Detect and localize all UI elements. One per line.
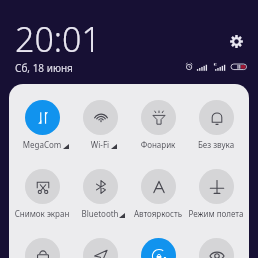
staticText: Автояркость [113,208,203,219]
button[interactable]: Фонарик [129,100,187,158]
button[interactable]: Tile [129,238,187,258]
button[interactable]: Снимок экран [13,169,71,227]
staticText: Снимок экран [9,208,87,219]
button[interactable]: Tile [187,238,245,258]
button[interactable]: Автояркость [129,169,187,227]
button[interactable]: Без звука [187,100,245,158]
staticText: Bluetooth [55,208,145,219]
button[interactable]: MegaCom [13,100,71,158]
button[interactable]: Tile [13,238,71,258]
button[interactable]: Bluetooth [71,169,129,227]
staticText: Wi-Fi [55,139,145,150]
button[interactable]: Settings [226,31,247,52]
staticText: Фонарик [113,139,203,150]
button[interactable]: Tile [71,238,129,258]
staticText: Режим полета [171,208,249,219]
staticText: Сб, 18 июня [15,61,73,75]
staticText: Без звука [171,139,249,150]
staticText: MegaCom [9,139,87,150]
button[interactable]: Wi-Fi [71,100,129,158]
staticText: 20:01 [15,16,101,62]
button[interactable]: Режим полета [187,169,245,227]
